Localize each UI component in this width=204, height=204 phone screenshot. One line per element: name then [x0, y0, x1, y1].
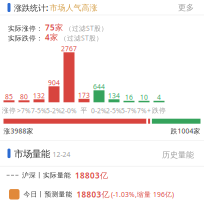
staticText: (-1.03%,缩量 196亿)	[111, 190, 174, 199]
staticText: 更多	[178, 3, 194, 12]
staticText: 7%+	[137, 106, 151, 115]
staticText: 173	[78, 91, 90, 100]
button[interactable]: 历史量能	[160, 148, 196, 161]
staticText: 12-24	[52, 150, 70, 159]
staticText: 132	[33, 91, 45, 100]
staticText: 平	[80, 106, 87, 115]
staticText: 75家	[45, 22, 63, 33]
staticText: 4	[157, 93, 161, 102]
staticText: 85	[5, 92, 13, 101]
staticText: 80	[20, 92, 28, 101]
staticText: 沪深丨实际量能	[22, 171, 71, 179]
staticText: 904	[48, 78, 60, 87]
staticText: 历史量能	[162, 150, 194, 160]
staticText: 市场量能	[14, 148, 50, 160]
staticText: >7%	[17, 106, 31, 115]
staticText: （过滤ST股）	[60, 34, 103, 42]
staticText: 跌1004家	[170, 127, 200, 135]
staticText: 134	[108, 91, 120, 100]
staticText: 4家	[45, 32, 58, 42]
staticText: 18803亿	[76, 189, 109, 200]
staticText: （过滤ST股）	[65, 24, 108, 33]
staticText: 2-0%	[61, 106, 77, 115]
staticText: 2-5%	[106, 106, 122, 115]
button[interactable]: 今日丨预测量能	[0, 185, 204, 204]
staticText: 实际跌停：	[8, 34, 43, 42]
staticText: 涨3988家	[3, 127, 33, 135]
staticText: 今日丨预测量能	[23, 190, 72, 198]
staticText: 0-2%	[91, 106, 107, 115]
staticText: 644	[93, 82, 105, 91]
staticText: 18803亿	[75, 170, 108, 181]
staticText: 市场人气高涨	[49, 3, 97, 13]
staticText: 5-2%	[46, 106, 62, 115]
staticText: 16	[125, 93, 133, 102]
button[interactable]: 更多	[176, 1, 196, 14]
staticText: 实际涨停：	[8, 24, 43, 33]
staticText: 5-7%	[121, 106, 137, 115]
staticText: 2767	[61, 44, 77, 53]
staticText: 涨跌统计:	[14, 2, 48, 13]
staticText: 跌停	[152, 106, 166, 115]
staticText: 10	[140, 93, 148, 102]
staticText: 涨停	[2, 106, 16, 115]
staticText: 7-5%	[31, 106, 47, 115]
button[interactable]: 沪深丨实际量能	[0, 167, 204, 184]
